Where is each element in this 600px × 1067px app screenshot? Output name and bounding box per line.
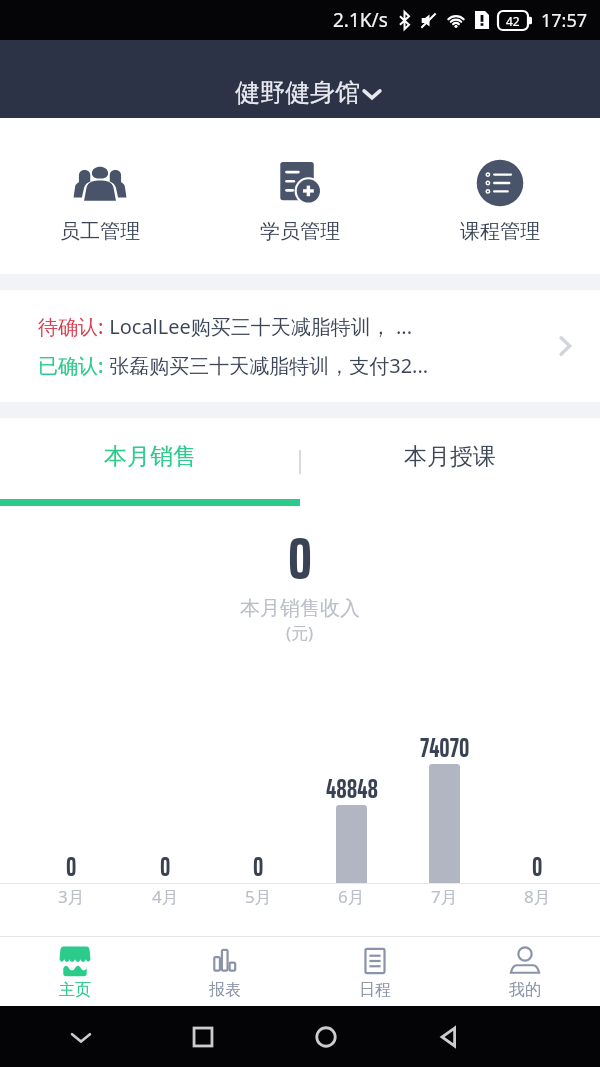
button[interactable]: 待确认: bbox=[0, 290, 600, 402]
button[interactable]: 我的 bbox=[450, 937, 600, 1006]
staticText: 张磊购买三十天减脂特训，支付32... bbox=[104, 352, 429, 379]
staticText: 学员管理 bbox=[260, 219, 340, 244]
staticText: 我的 bbox=[509, 980, 541, 1000]
staticText: 本月销售收入 bbox=[240, 596, 360, 621]
staticText: 4月 bbox=[152, 885, 179, 908]
staticText: 员工管理 bbox=[60, 219, 140, 244]
staticText: 课程管理 bbox=[460, 219, 540, 244]
staticText: 2.1K/s bbox=[333, 7, 388, 33]
staticText: 6月 bbox=[338, 885, 365, 908]
staticText: 3月 bbox=[58, 885, 85, 908]
staticText: 8月 bbox=[524, 885, 551, 908]
staticText: LocalLee购买三十天减脂特训， ... bbox=[104, 313, 413, 340]
button[interactable]: Home bbox=[264, 1006, 387, 1067]
staticText: 5月 bbox=[245, 885, 272, 908]
staticText: 42 bbox=[506, 13, 520, 29]
staticText: 0 bbox=[532, 846, 543, 887]
staticText: 0 bbox=[160, 846, 171, 887]
staticText: 报表 bbox=[209, 980, 241, 1000]
staticText: 已确认: bbox=[38, 352, 104, 379]
staticText: (元) bbox=[286, 621, 314, 644]
button[interactable]: 健野健身馆 bbox=[225, 73, 393, 112]
staticText: 0 bbox=[253, 846, 264, 887]
button[interactable]: 员工管理 bbox=[0, 118, 200, 274]
staticText: 日程 bbox=[359, 980, 391, 1000]
button[interactable]: 学员管理 bbox=[200, 118, 400, 274]
button[interactable]: 本月销售 bbox=[0, 418, 300, 506]
button[interactable]: Back bbox=[387, 1006, 510, 1067]
staticText: 7月 bbox=[431, 885, 458, 908]
button[interactable]: 课程管理 bbox=[400, 118, 600, 274]
staticText: 48848 bbox=[326, 768, 378, 809]
staticText: 本月销售 bbox=[104, 442, 196, 471]
button[interactable]: 日程 bbox=[300, 937, 450, 1006]
staticText: 0 bbox=[288, 511, 312, 605]
button[interactable]: 主页 bbox=[0, 937, 150, 1006]
staticText: 74070 bbox=[420, 727, 470, 768]
staticText: 主页 bbox=[59, 980, 91, 1000]
staticText: 健野健身馆 bbox=[235, 77, 360, 108]
staticText: 待确认: bbox=[38, 313, 104, 340]
button[interactable]: Recent apps bbox=[142, 1006, 264, 1067]
staticText: 17:57 bbox=[541, 8, 588, 33]
button[interactable]: 本月授课 bbox=[300, 418, 600, 506]
staticText: 0 bbox=[66, 846, 77, 887]
button[interactable]: 报表 bbox=[150, 937, 300, 1006]
staticText: 本月授课 bbox=[404, 442, 496, 471]
button[interactable]: Hide keyboard bbox=[20, 1006, 142, 1067]
